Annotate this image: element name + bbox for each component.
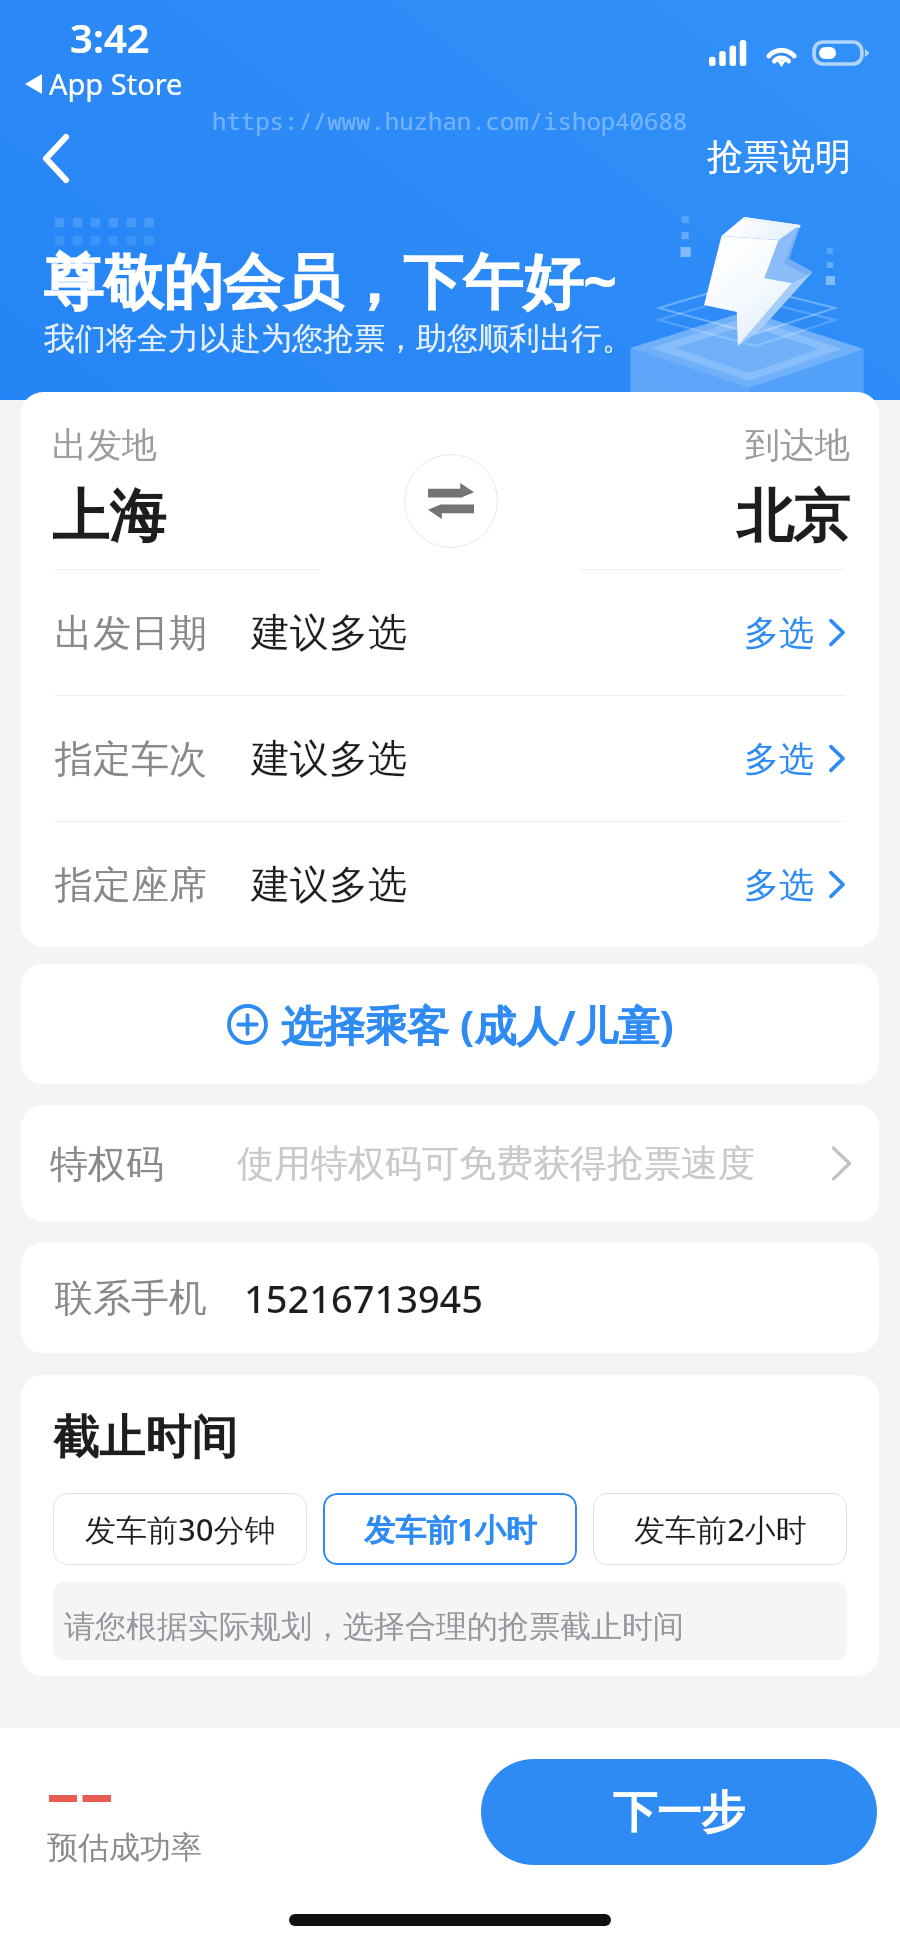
button[interactable]: 出发日期 xyxy=(21,570,879,695)
staticText: 特权码 xyxy=(50,1140,164,1188)
staticText: 尊敬的会员，下午好~ xyxy=(43,239,618,321)
button[interactable]: 联系手机 xyxy=(21,1242,879,1353)
staticText: 多选 xyxy=(744,611,814,655)
button[interactable]: 下一步 xyxy=(481,1759,877,1865)
button[interactable]: 特权码 xyxy=(21,1105,879,1222)
staticText: 出发地 xyxy=(52,423,157,467)
staticText: 建议多选 xyxy=(251,860,407,909)
button[interactable]: 指定车次 xyxy=(21,696,879,821)
staticText: https://www.huzhan.com/ishop40688 xyxy=(212,104,688,137)
button[interactable]: 发车前30分钟 xyxy=(53,1493,307,1565)
staticText: 发车前2小时 xyxy=(634,1508,807,1550)
button[interactable]: 抢票说明 xyxy=(699,128,859,185)
staticText: 请您根据实际规划，选择合理的抢票截止时间 xyxy=(64,1607,684,1646)
button[interactable]: 指定座席 xyxy=(21,822,879,947)
staticText: 多选 xyxy=(744,863,814,907)
button[interactable]: 发车前2小时 xyxy=(593,1493,847,1565)
staticText: 使用特权码可免费获得抢票速度 xyxy=(237,1140,755,1187)
staticText: 我们将全力以赴为您抢票，助您顺利出行。 xyxy=(44,319,633,358)
staticText: 下一步 xyxy=(613,1785,745,1840)
staticText: 建议多选 xyxy=(251,734,407,783)
staticText: 到达地 xyxy=(745,423,850,467)
staticText: 15216713945 xyxy=(244,1272,484,1324)
staticText: 出发日期 xyxy=(55,609,207,657)
staticText: 指定车次 xyxy=(55,735,207,783)
button[interactable]: 选择乘客 (成人/儿童) xyxy=(21,964,879,1084)
staticText: 截止时间 xyxy=(53,1409,237,1467)
staticText: 预估成功率 xyxy=(47,1828,202,1867)
staticText: 建议多选 xyxy=(251,608,407,657)
staticText: 发车前30分钟 xyxy=(85,1508,276,1550)
staticText: 发车前1小时 xyxy=(364,1508,537,1550)
staticText: 联系手机 xyxy=(55,1274,207,1322)
button[interactable]: Back xyxy=(19,122,91,194)
staticText: 多选 xyxy=(744,737,814,781)
staticText: 指定座席 xyxy=(55,861,207,909)
staticText: App Store xyxy=(49,64,183,103)
button[interactable]: 发车前1小时 xyxy=(323,1493,577,1565)
staticText: 抢票说明 xyxy=(707,134,851,179)
staticText: 上海 xyxy=(52,481,166,553)
staticText: 3:42 xyxy=(70,10,150,64)
button[interactable]: Swap departure and arrival xyxy=(404,454,498,548)
staticText: 北京 xyxy=(736,481,850,553)
staticText: 选择乘客 (成人/儿童) xyxy=(281,996,674,1053)
